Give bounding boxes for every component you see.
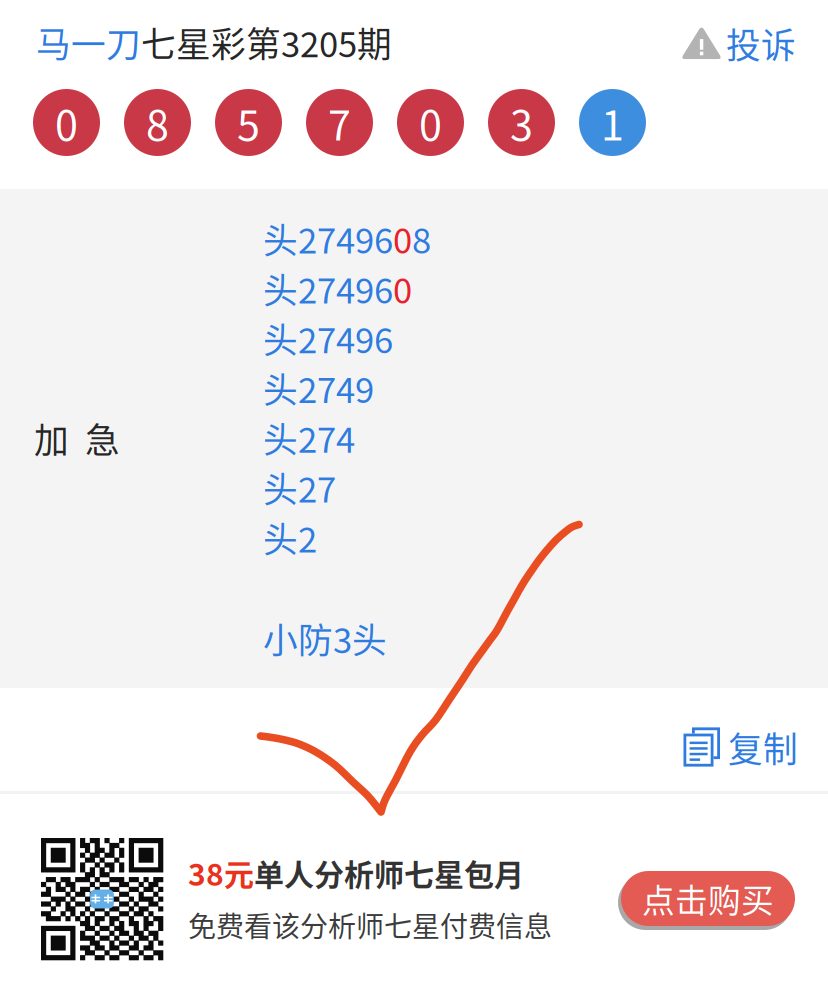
staticText: 七星彩第3205期 bbox=[141, 17, 392, 67]
staticText: 头274 bbox=[263, 413, 355, 463]
staticText: 免费看该分析师七星付费信息 bbox=[188, 904, 552, 945]
staticText: 加 急 bbox=[34, 413, 120, 463]
staticText: 投诉 bbox=[726, 18, 796, 68]
button[interactable]: 点击购买 bbox=[618, 871, 795, 930]
staticText: 单人分析师七星包月 bbox=[254, 851, 524, 894]
staticText: 小防3头 bbox=[263, 613, 387, 663]
staticText: 3 bbox=[510, 93, 533, 152]
staticText: 0 bbox=[55, 93, 78, 152]
staticText: 头27496 bbox=[263, 313, 393, 363]
staticText: 头27496 bbox=[263, 213, 393, 264]
staticText: 马一刀 bbox=[36, 17, 141, 67]
staticText: 8 bbox=[146, 93, 169, 152]
staticText: 38元 bbox=[188, 851, 254, 894]
staticText: 0 bbox=[393, 263, 412, 313]
staticText: 复制 bbox=[728, 722, 798, 772]
staticText: 0 bbox=[393, 213, 412, 264]
staticText: 5 bbox=[237, 93, 260, 152]
button[interactable]: 复制 bbox=[682, 722, 798, 772]
staticText: 头2 bbox=[263, 512, 317, 562]
staticText: 头27496 bbox=[263, 263, 393, 313]
staticText: 头27 bbox=[263, 462, 336, 513]
staticText: 0 bbox=[419, 93, 442, 152]
staticText: 7 bbox=[328, 93, 351, 152]
button[interactable]: 投诉 bbox=[681, 18, 796, 68]
staticText: 点击购买 bbox=[642, 875, 774, 922]
staticText: 1 bbox=[601, 93, 624, 152]
staticText: 8 bbox=[412, 213, 431, 264]
staticText: 头2749 bbox=[263, 363, 374, 413]
